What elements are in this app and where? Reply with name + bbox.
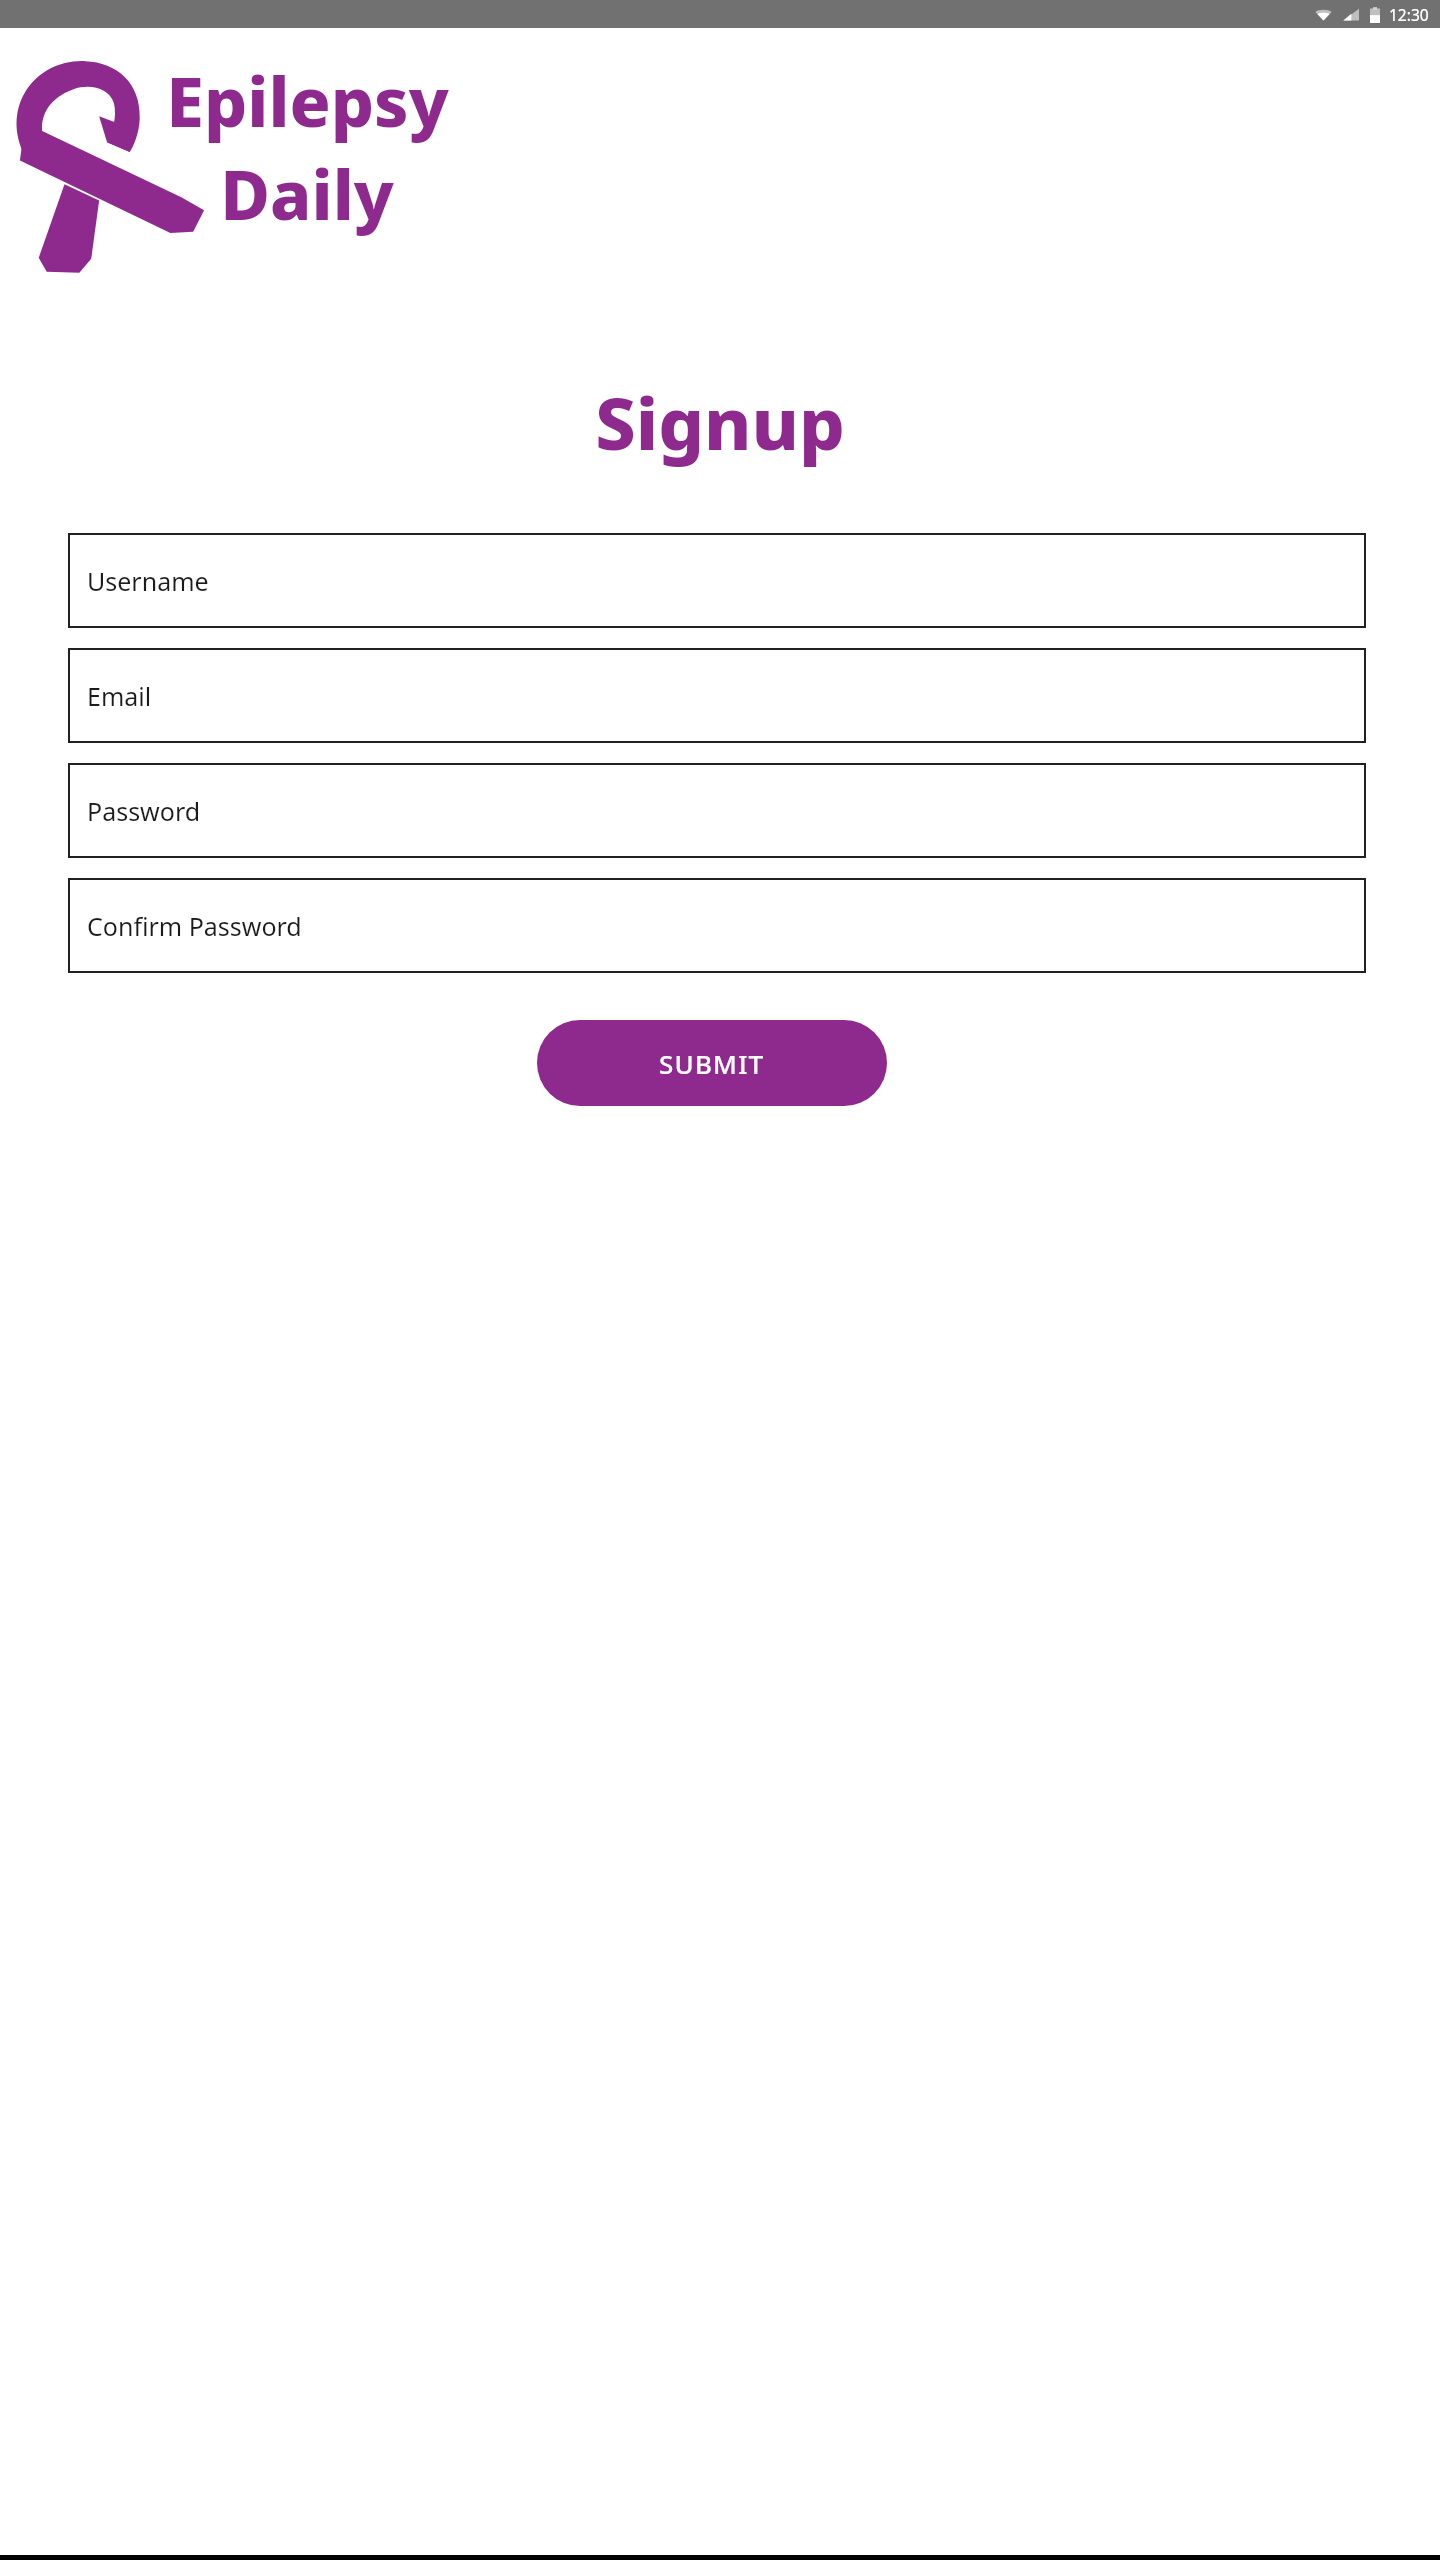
button[interactable]: SUBMIT [537,1020,887,1106]
button[interactable]: Password [68,763,1366,858]
staticText: Signup [595,373,845,471]
staticText: Epilepsy [166,54,449,147]
button[interactable]: Username [68,533,1366,628]
staticText: SUBMIT [659,1046,765,1081]
staticText: Email [87,679,152,713]
button[interactable]: Email [68,648,1366,743]
staticText: Username [87,564,209,598]
staticText: Daily [220,147,394,240]
staticText: 12:30 [1389,4,1429,25]
staticText: Confirm Password [87,909,302,943]
staticText: Password [87,794,201,828]
button[interactable]: Confirm Password [68,878,1366,973]
